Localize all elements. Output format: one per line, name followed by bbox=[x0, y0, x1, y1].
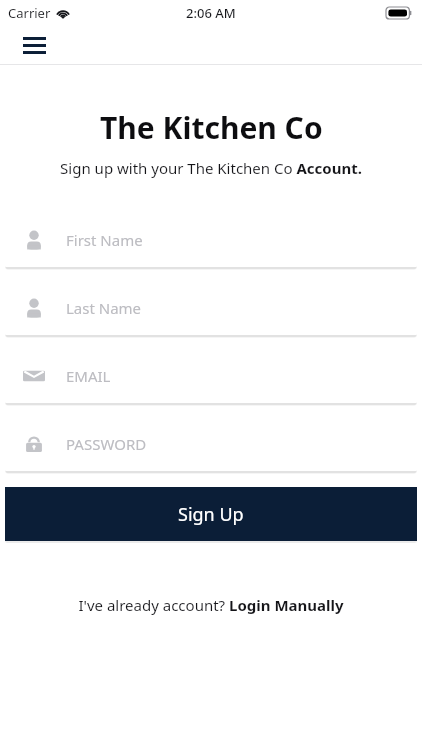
staticText: Carrier bbox=[8, 4, 51, 22]
button[interactable]: Last Name bbox=[5, 280, 417, 335]
button[interactable]: PASSWORD bbox=[5, 416, 417, 471]
staticText: The Kitchen Co bbox=[100, 107, 323, 148]
button[interactable]: I've already account? Login Manually bbox=[66, 589, 356, 621]
staticText: PASSWORD bbox=[66, 434, 147, 454]
staticText: EMAIL bbox=[66, 366, 111, 386]
button[interactable]: EMAIL bbox=[5, 348, 417, 403]
button[interactable]: Sign Up bbox=[5, 487, 417, 541]
staticText: I've already account? Login Manually bbox=[78, 595, 344, 615]
button[interactable]: First Name bbox=[5, 212, 417, 267]
staticText: Last Name bbox=[66, 298, 142, 318]
staticText: Sign up with your The Kitchen Co Account… bbox=[60, 158, 362, 178]
staticText: Sign Up bbox=[178, 502, 244, 527]
staticText: First Name bbox=[66, 230, 143, 250]
button[interactable]: Open navigation menu bbox=[14, 26, 54, 64]
staticText: 2:06 AM bbox=[186, 4, 236, 22]
